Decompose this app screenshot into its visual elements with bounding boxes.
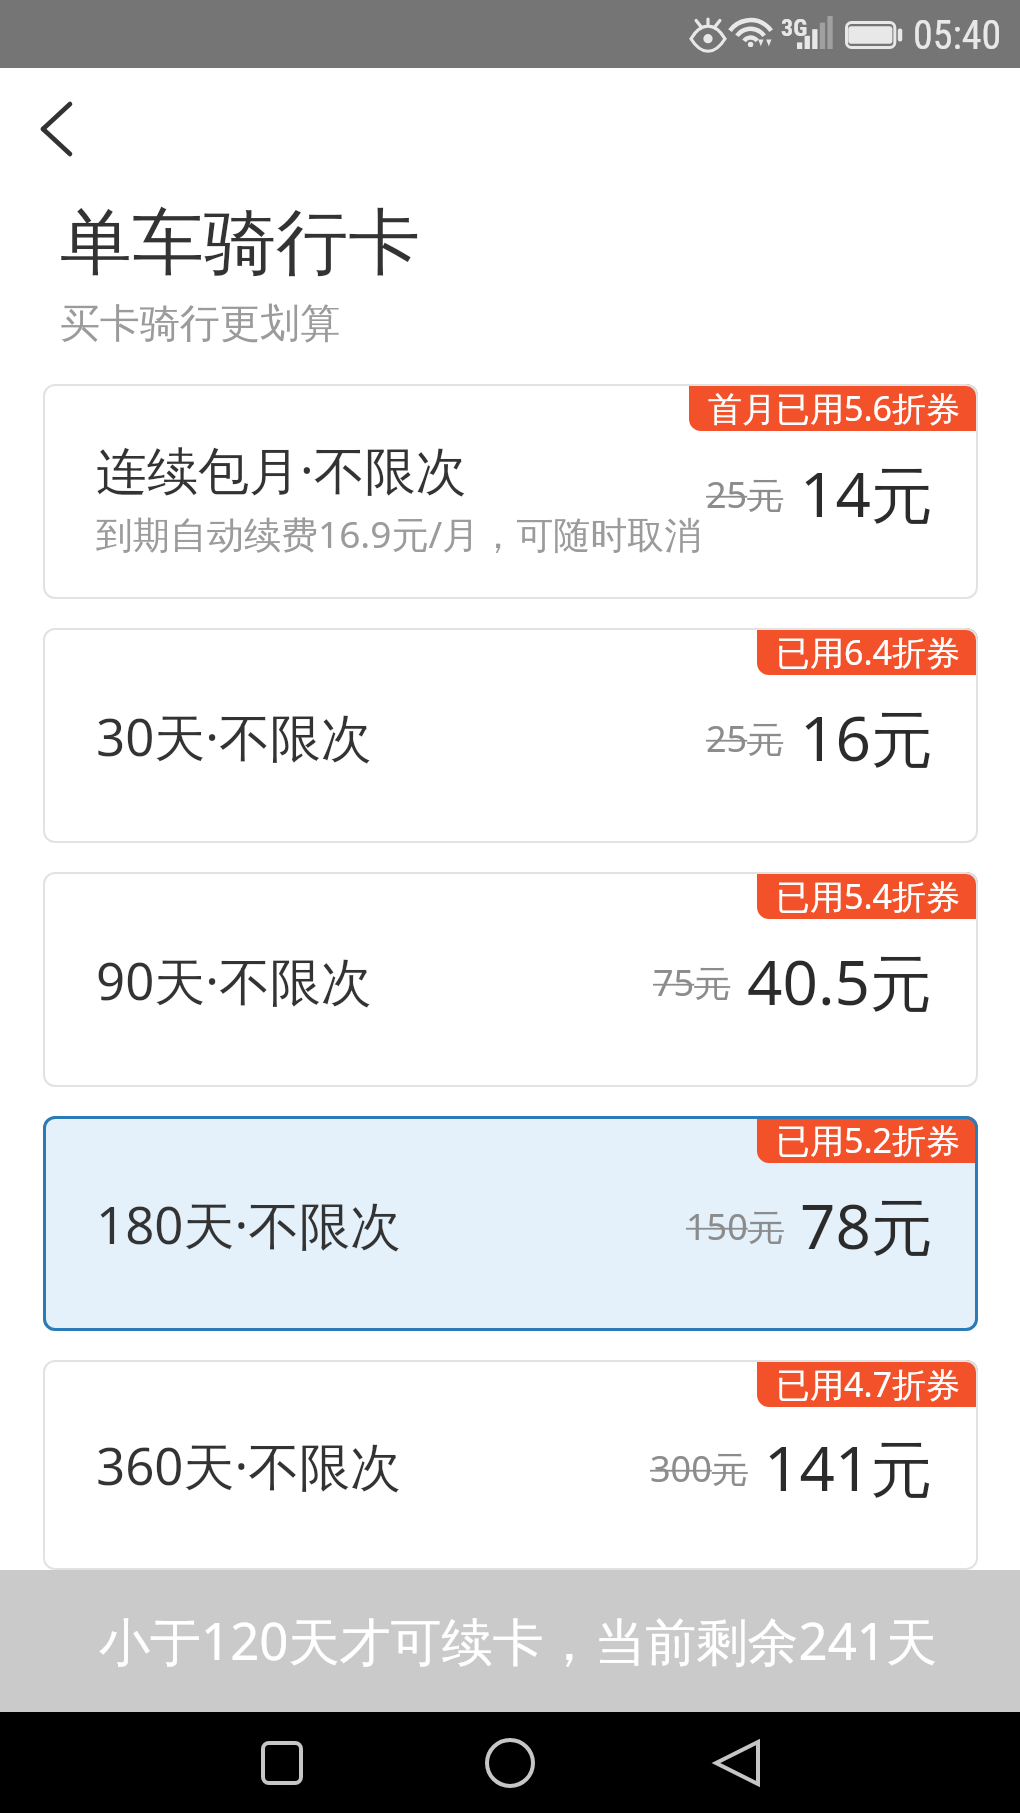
button[interactable]: 已用4.7折券 xyxy=(43,1360,978,1570)
button[interactable]: 已用5.4折券 xyxy=(43,872,978,1087)
staticText: 75元 xyxy=(653,958,731,1007)
staticText: 买卡骑行更划算 xyxy=(60,298,340,348)
staticText: 16元 xyxy=(800,695,933,780)
button[interactable]: Recents xyxy=(222,1712,342,1813)
staticText: 141元 xyxy=(764,1425,933,1510)
staticText: 30天·不限次 xyxy=(96,701,373,771)
button[interactable]: 首月已用5.6折券 xyxy=(43,384,978,599)
staticText: 78元 xyxy=(800,1183,933,1268)
staticText: 300元 xyxy=(650,1444,748,1493)
staticText: 25元 xyxy=(706,470,784,519)
staticText: 05:40 xyxy=(913,12,1002,59)
button[interactable]: Home xyxy=(450,1712,570,1813)
staticText: 150元 xyxy=(686,1202,784,1251)
staticText: 连续包月·不限次 xyxy=(96,434,467,504)
staticText: 单车骑行卡 xyxy=(60,198,420,289)
staticText: 360天·不限次 xyxy=(96,1430,402,1500)
staticText: 已用6.4折券 xyxy=(776,629,961,675)
staticText: 25元 xyxy=(706,714,784,763)
button[interactable]: Back xyxy=(677,1712,797,1813)
staticText: 3G xyxy=(781,14,808,42)
button[interactable]: 已用6.4折券 xyxy=(43,628,978,843)
staticText: 小于120天才可续卡，当前剩余241天 xyxy=(99,1605,938,1675)
button[interactable]: Back xyxy=(0,68,118,158)
button[interactable]: 已用5.2折券 xyxy=(43,1116,978,1331)
staticText: 首月已用5.6折券 xyxy=(708,385,961,431)
staticText: 已用5.2折券 xyxy=(776,1117,961,1163)
staticText: 180天·不限次 xyxy=(96,1189,402,1259)
staticText: 到期自动续费16.9元/月，可随时取消 xyxy=(96,508,702,559)
staticText: 已用4.7折券 xyxy=(776,1361,961,1407)
staticText: 90天·不限次 xyxy=(96,945,373,1015)
staticText: 已用5.4折券 xyxy=(776,873,961,919)
staticText: 40.5元 xyxy=(747,939,933,1024)
staticText: 14元 xyxy=(800,451,933,536)
